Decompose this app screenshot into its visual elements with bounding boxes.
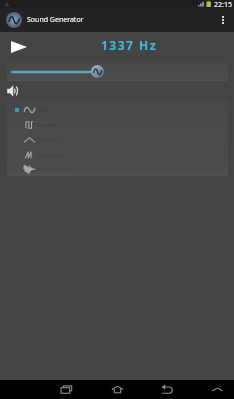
button[interactable]: Expand [206, 380, 228, 399]
staticText: White Noise [37, 165, 70, 173]
button[interactable]: Volume [4, 82, 20, 99]
button[interactable]: Triangle [7, 132, 228, 147]
staticText: 1337 Hz [101, 37, 158, 53]
staticText: 22:15 [214, 0, 232, 8]
button[interactable]: More options [212, 8, 234, 32]
button[interactable]: White Noise [7, 162, 228, 176]
button[interactable]: Sine [7, 102, 228, 117]
button[interactable]: Recent apps [55, 380, 77, 399]
button[interactable]: Play [5, 36, 33, 57]
button[interactable]: Sawtooth [7, 147, 228, 162]
button[interactable]: Square [7, 117, 228, 132]
staticText: Sound Generator [27, 15, 84, 25]
button[interactable]: Frequency slider [91, 65, 104, 78]
button[interactable]: Back [156, 380, 178, 399]
button[interactable]: Home [106, 380, 128, 399]
